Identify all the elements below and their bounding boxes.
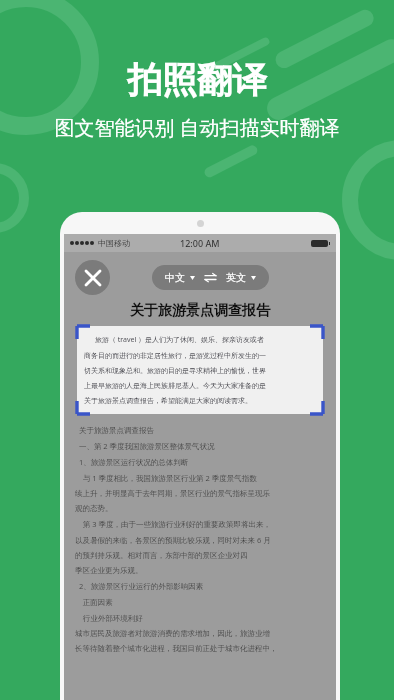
staticText: 中文 — [165, 271, 185, 284]
staticText: 上最早旅游的人是海上民族腓尼基人。今天为大家准备的是 — [84, 381, 266, 390]
button[interactable]: 中文 — [152, 265, 269, 290]
staticText: 与 1 季度相比，我国旅游景区行业第 2 季度景气指数 — [75, 473, 257, 483]
staticText: 2、旅游景区行业运行的外部影响因素 — [75, 581, 204, 591]
staticText: 1、旅游景区运行状况的总体判断 — [75, 457, 189, 467]
staticText: 的预判持乐观。相对而言，东部中部的景区企业对四 — [75, 551, 248, 560]
staticText: 行业外部环境利好 — [75, 613, 143, 623]
staticText: 观的态势。 — [75, 504, 113, 513]
button[interactable]: Close — [75, 260, 110, 295]
staticText: 一、第 2 季度我国旅游景区整体景气状况 — [75, 441, 215, 451]
staticText: 英文 — [226, 271, 246, 284]
staticText: 第 3 季度，由于一些旅游行业利好的重要政策即将出来， — [75, 519, 271, 529]
staticText: 切关系和现象总和。旅游的目的是寻求精神上的愉悦，世界 — [84, 366, 266, 375]
staticText: 关于旅游景点调查报告 — [75, 302, 325, 320]
staticText: 以及暑假的来临，各景区的预期比较乐观，同时对未来 6 月 — [75, 535, 271, 545]
staticText: 关于旅游景点调查报告 — [75, 425, 154, 435]
staticText: 正面因素 — [75, 597, 113, 607]
staticText: 中国移动 — [98, 238, 130, 248]
staticText: 12:00 AM — [180, 237, 220, 249]
staticText: 拍照翻译 — [127, 58, 267, 102]
staticText: 旅游（ travel ）是人们为了休闲、娱乐、探亲访友或者 — [84, 335, 265, 345]
staticText: 商务目的而进行的非定居性旅行，是游览过程中所发生的一 — [84, 351, 266, 360]
staticText: 城市居民及旅游者对旅游消费的需求增加，因此，旅游业增 — [75, 629, 270, 638]
staticText: 长等待随着整个城市化进程，我国目前正处于城市化进程中， — [75, 644, 278, 653]
button[interactable]: 旅游（ travel ）是人们为了休闲、娱乐、探亲访友或者 — [77, 326, 323, 414]
staticText: 续上升，并明显高于去年同期，景区行业的景气指标呈现乐 — [75, 489, 270, 498]
staticText: 季区企业更为乐观。 — [75, 566, 143, 575]
staticText: 图文智能识别 自动扫描实时翻译 — [54, 114, 340, 141]
staticText: 关于旅游景点调查报告，希望能满足大家的阅读需求。 — [84, 396, 252, 405]
